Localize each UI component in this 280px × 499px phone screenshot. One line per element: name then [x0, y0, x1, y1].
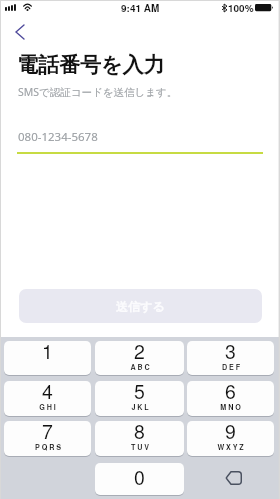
staticText: WXYZ — [217, 442, 246, 452]
button[interactable]: 5 — [95, 381, 184, 416]
button[interactable]: 3 — [187, 341, 274, 375]
staticText: JKL — [131, 402, 151, 412]
button[interactable]: Delete — [187, 463, 274, 495]
staticText: 9 — [225, 421, 236, 445]
button[interactable]: 7 — [4, 421, 91, 456]
button[interactable]: 2 — [95, 341, 184, 375]
staticText: 100% — [228, 1, 254, 15]
staticText: 送信する — [116, 299, 165, 314]
button[interactable]: 9 — [187, 421, 274, 456]
button[interactable]: 0 — [95, 463, 184, 495]
staticText: 080-1234-5678 — [18, 129, 98, 145]
button[interactable]: 8 — [95, 421, 184, 456]
staticText: ABC — [130, 362, 152, 372]
button[interactable]: Back — [8, 23, 30, 41]
staticText: 2 — [134, 341, 145, 365]
staticText: 1 — [42, 341, 53, 365]
staticText: 7 — [42, 421, 53, 445]
staticText: PQRS — [35, 442, 63, 452]
staticText: 0 — [134, 463, 145, 491]
button[interactable]: 6 — [187, 381, 274, 416]
staticText: 電話番号を入力 — [17, 52, 165, 78]
button[interactable]: 送信する — [19, 289, 262, 323]
staticText: 9:41 AM — [121, 1, 160, 15]
button[interactable]: 4 — [4, 381, 91, 416]
staticText: 4 — [42, 381, 53, 405]
staticText: 5 — [134, 381, 145, 405]
staticText: 3 — [225, 341, 236, 365]
staticText: MNO — [220, 402, 243, 412]
button[interactable]: 1 — [4, 341, 91, 375]
staticText: TUV — [131, 442, 151, 452]
staticText: GHI — [39, 402, 58, 412]
staticText: 8 — [134, 421, 145, 445]
staticText: 6 — [225, 381, 236, 405]
staticText: DEF — [222, 362, 242, 372]
staticText: SMSで認証コードを送信します。 — [18, 85, 178, 99]
